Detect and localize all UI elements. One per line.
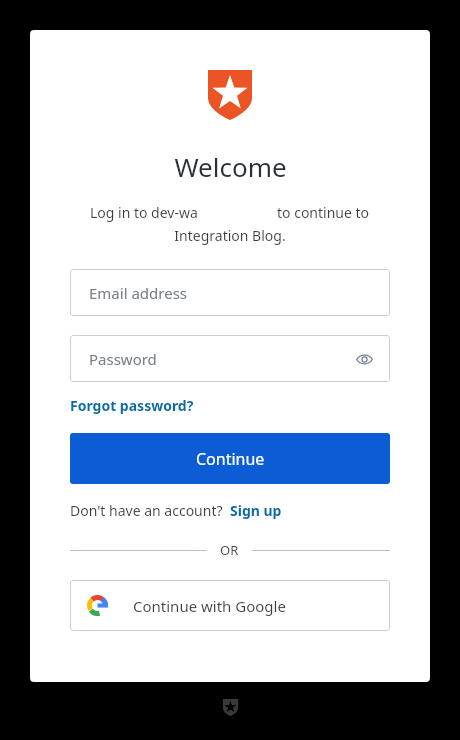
staticText: Password [89,349,157,369]
button[interactable]: Password [70,335,390,382]
staticText: Forgot password? [70,396,194,415]
button[interactable]: Sign up [230,501,282,520]
staticText: Continue [196,448,265,470]
staticText: Welcome [174,149,287,184]
button[interactable]: Show password [351,346,377,372]
staticText: Continue with Google [133,596,286,616]
button[interactable]: Continue with Google [70,580,390,631]
button[interactable]: Email address [70,269,390,316]
staticText: Integration Blog. [174,226,286,245]
staticText: OR [220,541,239,559]
staticText: Sign up [230,501,282,520]
button[interactable]: Continue [70,433,390,484]
other: Auth0 [223,699,238,716]
staticText: to continue to [277,203,370,222]
button[interactable]: Forgot password? [70,396,194,415]
staticText: Email address [89,283,188,303]
staticText: Don't have an account? [70,501,223,520]
staticText: Log in to dev-wa [90,203,198,222]
